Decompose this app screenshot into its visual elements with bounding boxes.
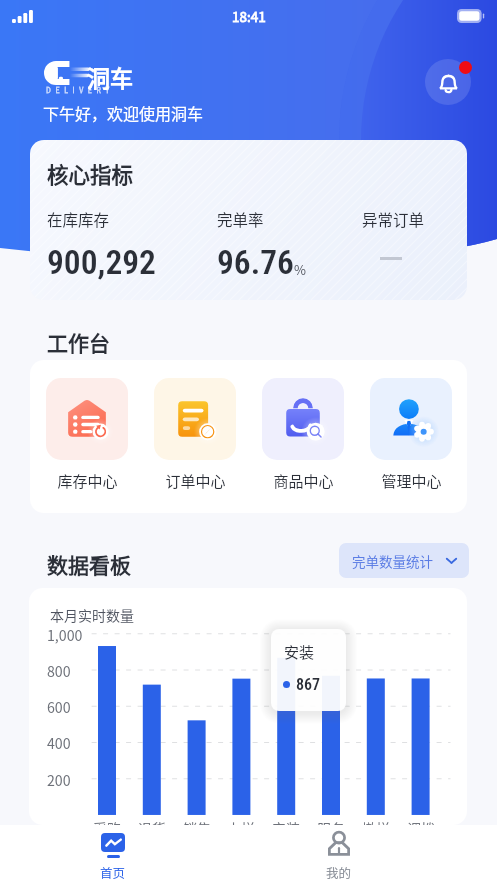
staticText: 安装 [284, 641, 315, 663]
staticText: 下午好，欢迎使用洞车 [43, 101, 204, 124]
staticText: % [294, 260, 306, 279]
staticText: 服务 [307, 818, 355, 825]
staticText: 核心指标 [47, 158, 134, 189]
button[interactable]: Notifications [425, 59, 471, 105]
staticText: 18:41 [232, 6, 266, 26]
staticText: 数据看板 [47, 549, 131, 579]
staticText: 撤样 [352, 818, 400, 825]
staticText: 商品中心 [273, 470, 334, 492]
button[interactable]: 首页 [89, 825, 137, 881]
staticText: 200 [47, 770, 71, 791]
button[interactable]: 订单中心 [154, 378, 236, 492]
staticText: 我的 [326, 863, 352, 881]
staticText: DELIVERY [46, 85, 114, 95]
button[interactable]: 管理中心 [370, 378, 452, 492]
staticText: 退货 [128, 818, 176, 825]
staticText: 400 [47, 733, 71, 754]
staticText: 完单率 [217, 208, 264, 230]
staticText: 900,292 [47, 243, 156, 282]
staticText: 在库库存 [47, 208, 110, 230]
button[interactable]: 我的 [315, 825, 363, 881]
staticText: 调拨 [397, 818, 445, 825]
staticText: 异常订单 [362, 208, 425, 230]
staticText: 库存中心 [57, 470, 118, 492]
staticText: 867 [296, 675, 321, 694]
staticText: 96.76 [217, 243, 294, 282]
staticText: 1,000 [47, 625, 83, 646]
staticText: 本月实时数量 [50, 605, 134, 625]
staticText: 管理中心 [381, 470, 442, 492]
staticText: 订单中心 [165, 470, 226, 492]
staticText: 工作台 [47, 327, 110, 357]
staticText: 安装 [262, 818, 310, 825]
staticText: 600 [47, 697, 71, 718]
staticText: 800 [47, 661, 71, 682]
staticText: 完单数量统计 [352, 551, 433, 571]
staticText: 销售 [173, 818, 221, 825]
button[interactable]: 商品中心 [262, 378, 344, 492]
button[interactable]: 库存中心 [46, 378, 128, 492]
button[interactable]: 完单数量统计 [339, 543, 469, 578]
staticText: 首页 [100, 863, 126, 881]
staticText: 采购 [83, 818, 131, 825]
staticText: 洞车 [87, 60, 133, 93]
staticText: 上样 [217, 818, 265, 825]
